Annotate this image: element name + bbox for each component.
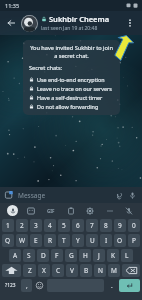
button[interactable]: P: [128, 234, 140, 247]
button[interactable]: D: [37, 249, 49, 262]
button[interactable]: GIF: [44, 204, 57, 217]
button[interactable]: K: [107, 249, 119, 262]
staticText: 2: [20, 221, 24, 230]
button[interactable]: Settings: [83, 204, 96, 217]
button[interactable]: 2: [16, 219, 28, 232]
button[interactable]: Send: [119, 279, 140, 292]
button[interactable]: 0: [128, 219, 140, 232]
staticText: P: [132, 236, 136, 245]
button[interactable]: Profile photo: [21, 15, 38, 32]
button[interactable]: Clipboard: [64, 204, 77, 217]
staticText: L: [125, 251, 129, 260]
button[interactable]: O: [114, 234, 126, 247]
staticText: M: [111, 266, 117, 275]
button[interactable]: B: [80, 264, 92, 277]
staticText: 5: [62, 221, 66, 230]
staticText: 6: [76, 221, 80, 230]
staticText: Use end-to-end encryption: [37, 76, 105, 83]
button[interactable]: S: [23, 249, 35, 262]
button[interactable]: You have invited Sukhbir to join a secre…: [23, 40, 120, 115]
staticText: Z: [28, 266, 32, 275]
button[interactable]: Sticker: [24, 204, 37, 217]
button[interactable]: .: [106, 279, 117, 292]
button[interactable]: Backspace: [122, 264, 140, 277]
button[interactable]: Voice input: [7, 205, 18, 216]
button[interactable]: G: [65, 249, 77, 262]
button[interactable]: Z: [23, 264, 36, 277]
button[interactable]: L: [121, 249, 133, 262]
button[interactable]: More: [103, 204, 116, 217]
button[interactable]: 4: [44, 219, 56, 232]
staticText: A: [13, 251, 18, 260]
staticText: 3: [34, 221, 38, 230]
staticText: W: [19, 236, 26, 245]
button[interactable]: Shift: [2, 264, 21, 277]
button[interactable]: R: [44, 234, 56, 247]
staticText: T: [62, 236, 66, 245]
staticText: ,: [26, 281, 28, 290]
staticText: last seen Jan 19 at 20:48: [41, 25, 98, 32]
staticText: E: [34, 236, 38, 245]
staticText: U: [90, 236, 95, 245]
button[interactable]: E: [30, 234, 42, 247]
button[interactable]: A: [9, 249, 21, 262]
staticText: 0: [132, 221, 136, 230]
button[interactable]: N: [94, 264, 106, 277]
button[interactable]: 6: [72, 219, 84, 232]
button[interactable]: Voice message: [127, 190, 138, 201]
staticText: .: [111, 281, 113, 290]
staticText: Q: [5, 236, 11, 245]
staticText: F: [55, 251, 59, 260]
staticText: N: [98, 266, 103, 275]
staticText: 4: [48, 221, 52, 230]
button[interactable]: C: [52, 264, 64, 277]
staticText: You have invited Sukhbir to join a secre…: [29, 44, 114, 60]
button[interactable]: Stickers: [4, 190, 14, 200]
button[interactable]: More options: [121, 14, 139, 32]
button[interactable]: J: [93, 249, 105, 262]
button[interactable]: X: [38, 264, 50, 277]
staticText: R: [48, 236, 53, 245]
staticText: Have a self-destruct timer: [37, 94, 103, 101]
button[interactable]: M: [108, 264, 120, 277]
staticText: K: [111, 251, 116, 260]
button[interactable]: F: [51, 249, 63, 262]
button[interactable]: ?123: [2, 279, 19, 292]
staticText: V: [70, 266, 74, 275]
button[interactable]: Emoji: [34, 279, 45, 292]
button[interactable]: I: [100, 234, 112, 247]
staticText: H: [83, 251, 88, 260]
staticText: B: [84, 266, 89, 275]
button[interactable]: H: [79, 249, 91, 262]
staticText: J: [98, 251, 100, 260]
staticText: 1: [6, 221, 10, 230]
button[interactable]: 7: [86, 219, 98, 232]
button[interactable]: Q: [2, 234, 14, 247]
button[interactable]: Attach: [114, 190, 125, 201]
button[interactable]: W: [16, 234, 28, 247]
staticText: D: [41, 251, 46, 260]
staticText: 9: [118, 221, 122, 230]
button[interactable]: 1: [2, 219, 14, 232]
button[interactable]: U: [86, 234, 98, 247]
button[interactable]: Y: [72, 234, 84, 247]
staticText: X: [42, 266, 46, 275]
button[interactable]: V: [66, 264, 78, 277]
button[interactable]: Sukhbir Cheema: [41, 14, 121, 32]
staticText: C: [56, 266, 61, 275]
staticText: Secret chats:: [29, 64, 63, 72]
button[interactable]: 3: [30, 219, 42, 232]
button[interactable]: T: [58, 234, 70, 247]
button[interactable]: 5: [58, 219, 70, 232]
button[interactable]: 9: [114, 219, 126, 232]
staticText: S: [27, 251, 31, 260]
staticText: 11:35: [5, 2, 20, 9]
button[interactable]: Mic off: [122, 204, 135, 217]
staticText: G: [69, 251, 74, 260]
button[interactable]: Back: [3, 15, 19, 31]
staticText: GIF: [47, 208, 55, 214]
staticText: I: [105, 236, 108, 245]
button[interactable]: ,: [21, 279, 32, 292]
button[interactable]: 8: [100, 219, 112, 232]
